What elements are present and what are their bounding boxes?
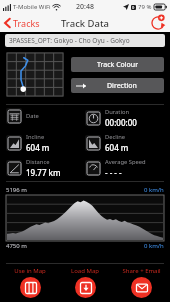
staticText: 604 m — [26, 142, 50, 153]
button[interactable]: Share + Email — [115, 267, 167, 298]
staticText: Incline — [26, 133, 45, 141]
staticText: 604 m — [105, 142, 129, 153]
staticText: Direction — [107, 81, 137, 91]
staticText: Track Colour — [97, 60, 139, 70]
staticText: Tracks — [13, 17, 40, 29]
button[interactable]: Load Map — [59, 267, 111, 298]
button[interactable]: Track Colour — [71, 57, 164, 72]
staticText: 0 km/h — [144, 186, 164, 194]
staticText: Decline — [105, 133, 126, 141]
button[interactable]: Incline — [6, 133, 85, 153]
staticText: 20:48 — [76, 2, 94, 12]
button[interactable]: Track map preview — [6, 52, 64, 97]
staticText: Average Speed — [105, 158, 146, 166]
button[interactable]: Elevation profile chart — [6, 195, 164, 241]
button[interactable]: Duration — [85, 108, 164, 128]
staticText: 79 % — [138, 3, 152, 11]
button[interactable]: Use in Map — [4, 267, 56, 298]
staticText: - - - - — [105, 167, 122, 178]
staticText: 4750 m — [6, 242, 27, 250]
button[interactable]: Direction — [71, 78, 164, 93]
staticText: Date — [26, 112, 39, 120]
staticText: Use in Map — [14, 267, 46, 275]
staticText: T-Mobile WiFi — [13, 3, 51, 11]
staticText: 5196 m — [6, 186, 27, 194]
staticText: Share + Email — [122, 267, 161, 275]
button[interactable]: Distance — [6, 158, 85, 178]
button[interactable]: Date — [6, 108, 85, 124]
staticText: 19.77 km — [26, 167, 61, 178]
button[interactable]: Average Speed — [85, 158, 164, 178]
staticText: Distance — [26, 158, 50, 166]
button[interactable]: Decline — [85, 133, 164, 153]
staticText: Track Data — [61, 17, 110, 30]
staticText: 0 km/h — [144, 242, 164, 250]
staticText: 0 — [132, 5, 135, 10]
button[interactable]: Tracks — [2, 15, 42, 31]
staticText: Load Map — [71, 267, 99, 275]
staticText: 3PASSES_OPT: Gokyo - Cho Oyu - Gokyo — [9, 36, 130, 45]
staticText: 00:00:00 — [105, 117, 137, 128]
button[interactable]: Add track — [150, 15, 166, 31]
staticText: Duration — [105, 108, 130, 116]
button[interactable]: 3PASSES_OPT: Gokyo - Cho Oyu - Gokyo — [5, 34, 165, 47]
